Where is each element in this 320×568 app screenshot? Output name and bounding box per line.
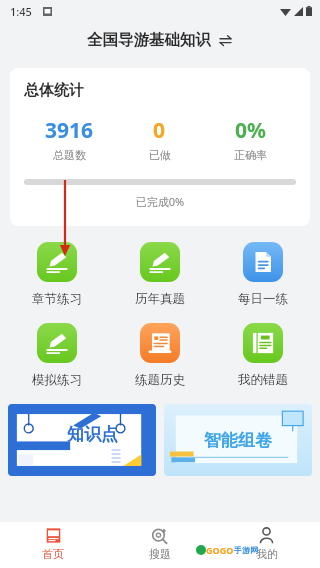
staticText: 总题数 — [53, 148, 86, 162]
staticText: 已完成0% — [24, 194, 296, 209]
staticText: 章节练习 — [32, 291, 82, 307]
staticText: 模拟练习 — [32, 372, 82, 388]
staticText: 已做 — [149, 148, 171, 162]
button[interactable]: 练题历史 — [108, 321, 211, 390]
button[interactable]: 首页 — [0, 522, 106, 568]
staticText: 知识点 — [67, 424, 118, 445]
staticText: 手游网 — [234, 545, 258, 555]
button[interactable]: 模拟练习 — [6, 321, 108, 390]
staticText: 3916 — [45, 116, 94, 145]
staticText: 正确率 — [234, 148, 267, 162]
button[interactable]: 我的错题 — [211, 321, 314, 390]
staticText: 1:45 — [10, 4, 32, 19]
staticText: 首页 — [42, 547, 64, 561]
button[interactable]: 章节练习 — [6, 240, 108, 309]
staticText: 每日一练 — [238, 291, 288, 307]
button[interactable]: 我的 — [213, 522, 320, 568]
staticText: 我的 — [256, 547, 278, 561]
staticText: 智能组卷 — [204, 430, 272, 451]
staticText: 历年真题 — [135, 291, 185, 307]
staticText: 搜题 — [149, 547, 171, 561]
button[interactable]: 每日一练 — [211, 240, 314, 309]
staticText: GOGO — [206, 544, 234, 556]
button[interactable]: 总体统计 — [10, 68, 310, 226]
button[interactable]: 知识点 — [8, 404, 156, 476]
staticText: 全国导游基础知识 — [87, 30, 211, 50]
staticText: 总体统计 — [24, 81, 84, 100]
staticText: 0 — [153, 116, 166, 145]
button[interactable]: 切换科目 — [217, 32, 233, 48]
staticText: 我的错题 — [238, 372, 288, 388]
button[interactable]: 智能组卷 — [164, 404, 312, 476]
staticText: 0% — [235, 116, 266, 145]
button[interactable]: 历年真题 — [108, 240, 211, 309]
staticText: 练题历史 — [135, 372, 185, 388]
button[interactable]: 搜题 — [106, 522, 213, 568]
